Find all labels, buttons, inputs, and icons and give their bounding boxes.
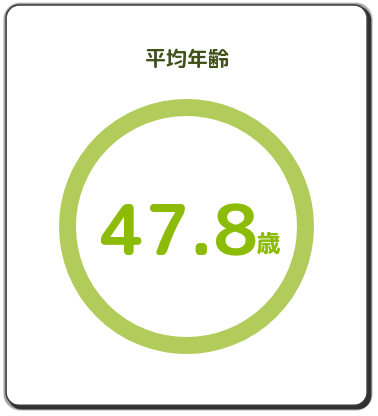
staticText: 歳 (256, 226, 280, 259)
button[interactable]: 平均年齢 47.8歳 (0, 0, 378, 416)
staticText: 47.8 (100, 180, 259, 278)
staticText: 平均年齢 (145, 43, 229, 72)
